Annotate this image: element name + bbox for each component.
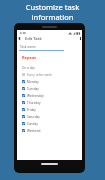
- staticText: Customize task information: [0, 2, 105, 22]
- staticText: Repeat: [22, 55, 37, 60]
- staticText: On a day: [22, 66, 35, 70]
- staticText: Weekend: [27, 129, 41, 133]
- staticText: Saturday: [27, 115, 40, 119]
- staticText: Thursday: [27, 101, 41, 105]
- button[interactable]: Every other week: [22, 71, 82, 78]
- button[interactable]: Weekend: [22, 127, 82, 134]
- button[interactable]: Saturday: [22, 113, 82, 120]
- button[interactable]: Thursday: [22, 99, 82, 106]
- staticText: Monday: [27, 80, 39, 84]
- staticText: Edit Task: [25, 36, 42, 41]
- button[interactable]: More options: [77, 35, 84, 42]
- staticText: Wednesday: [27, 94, 44, 98]
- button[interactable]: Back: [16, 35, 23, 42]
- staticText: Sunday: [27, 122, 38, 126]
- staticText: Task name: [20, 45, 36, 49]
- button[interactable]: On a day: [22, 64, 82, 71]
- button[interactable]: Tuesday: [22, 85, 82, 92]
- button[interactable]: Sunday: [22, 120, 82, 127]
- staticText: Tuesday: [27, 87, 39, 91]
- button[interactable]: Wednesday: [22, 92, 82, 99]
- button[interactable]: Friday: [22, 106, 82, 113]
- button[interactable]: Monday: [22, 78, 82, 85]
- staticText: Friday: [27, 108, 36, 112]
- staticText: Every other week: [27, 73, 52, 77]
